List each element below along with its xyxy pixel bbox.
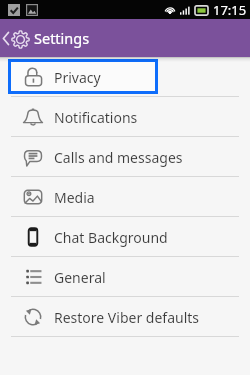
button[interactable]: Notifications [0, 97, 250, 137]
button[interactable]: Privacy [0, 57, 250, 97]
button[interactable]: Chat Background [0, 217, 250, 257]
staticText: Settings [34, 28, 90, 48]
button[interactable]: Navigate up [0, 19, 32, 57]
staticText: Privacy [54, 68, 101, 87]
staticText: 17:15 [213, 1, 247, 19]
staticText: Chat Background [54, 228, 168, 247]
staticText: Restore Viber defaults [54, 308, 200, 327]
button[interactable]: Calls and messages [0, 137, 250, 177]
staticText: Media [54, 188, 95, 207]
button[interactable]: Media [0, 177, 250, 217]
button[interactable]: Restore Viber defaults [0, 297, 250, 337]
button[interactable]: General [0, 257, 250, 297]
staticText: Notifications [54, 108, 138, 127]
staticText: General [54, 268, 106, 287]
staticText: Calls and messages [54, 148, 183, 167]
